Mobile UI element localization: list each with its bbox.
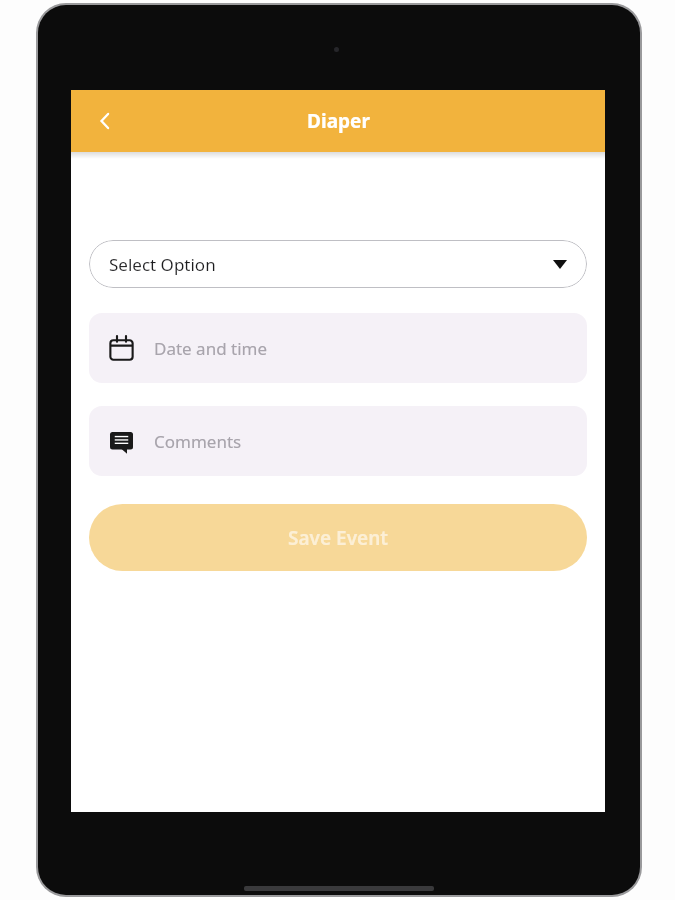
staticText: Date and time	[154, 337, 268, 360]
staticText: Comments	[154, 430, 242, 453]
button[interactable]: Add comments	[89, 406, 587, 476]
staticText: Select Option	[109, 253, 216, 276]
button[interactable]: Select Option	[89, 240, 587, 288]
button[interactable]: Back	[83, 99, 127, 143]
button[interactable]: Save Event	[89, 504, 587, 571]
staticText: Diaper	[307, 108, 370, 134]
staticText: Save Event	[288, 525, 388, 551]
button[interactable]: Pick date and time	[89, 313, 587, 383]
